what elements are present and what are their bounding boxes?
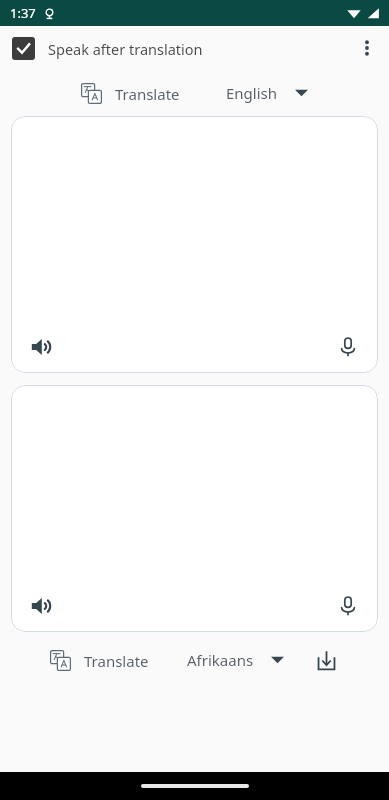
button[interactable]: Afrikaans	[181, 645, 290, 675]
staticText: Afrikaans	[187, 650, 254, 670]
button[interactable]: Save	[306, 640, 346, 680]
button[interactable]: Speak after translation	[0, 31, 213, 66]
staticText: Translate	[115, 84, 180, 104]
button[interactable]: Voice input	[328, 586, 368, 626]
button[interactable]: Speak	[21, 327, 61, 367]
button[interactable]: Speak	[11, 116, 378, 373]
staticText: English	[226, 83, 278, 103]
button[interactable]: Speak	[11, 385, 378, 632]
button[interactable]: English	[220, 78, 314, 108]
staticText: Translate	[84, 651, 149, 671]
button[interactable]: Voice input	[328, 327, 368, 367]
button[interactable]: More options	[345, 26, 389, 70]
button[interactable]: Speak	[21, 586, 61, 626]
button[interactable]: Translate	[44, 645, 155, 676]
staticText: Speak after translation	[48, 39, 203, 59]
staticText: 1:37	[10, 4, 36, 22]
button[interactable]: Translate	[75, 78, 186, 109]
